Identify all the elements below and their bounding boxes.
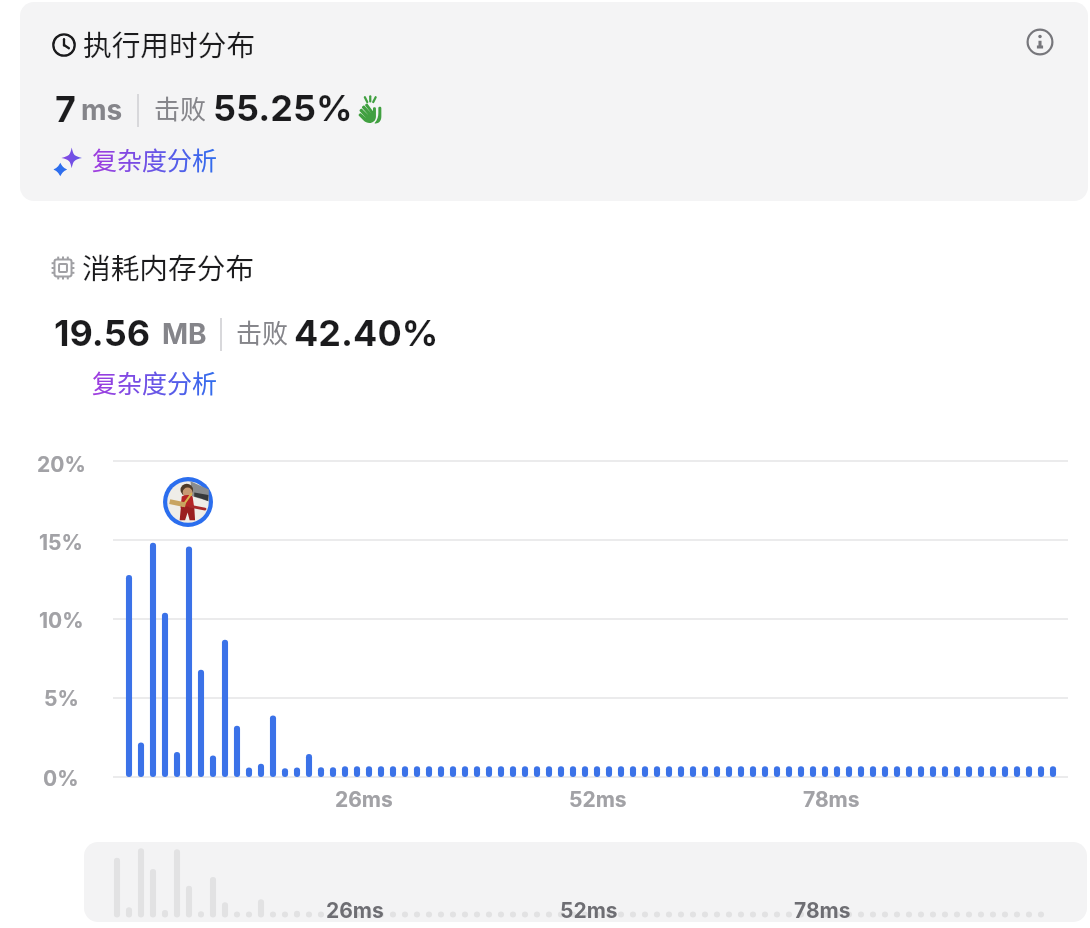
button[interactable]: 复杂度分析 <box>92 364 218 400</box>
staticText: MB <box>162 317 207 351</box>
staticText: 0% <box>43 766 79 791</box>
staticText: 5% <box>44 686 79 711</box>
button[interactable]: 复杂度分析 <box>48 127 174 183</box>
staticText: 复杂度分析 <box>92 364 218 400</box>
staticText: 55.25% <box>213 86 353 130</box>
staticText: 消耗内存分布 <box>82 246 255 288</box>
staticText: 击败 <box>236 313 289 351</box>
staticText: 52ms <box>569 787 627 812</box>
staticText: 执行用时分布 <box>83 23 256 65</box>
button[interactable]: 26ms <box>84 842 1087 922</box>
staticText: 19.56 <box>54 311 151 355</box>
staticText: 10% <box>39 608 84 633</box>
staticText: 击败 <box>154 89 207 127</box>
staticText: ms <box>81 93 123 127</box>
staticText: 15% <box>39 530 83 555</box>
staticText: 78ms <box>794 898 851 922</box>
staticText: 20% <box>37 452 86 477</box>
staticText: 78ms <box>803 787 860 812</box>
button[interactable]: More information <box>1016 18 1064 66</box>
staticText: 42.40% <box>294 311 439 355</box>
staticText: 7 <box>55 87 76 131</box>
button[interactable]: 执行用时分布 <box>20 2 1088 201</box>
staticText: 26ms <box>335 787 393 812</box>
staticText: 26ms <box>326 898 384 922</box>
staticText: 52ms <box>560 898 618 922</box>
staticText: 复杂度分析 <box>92 141 218 177</box>
